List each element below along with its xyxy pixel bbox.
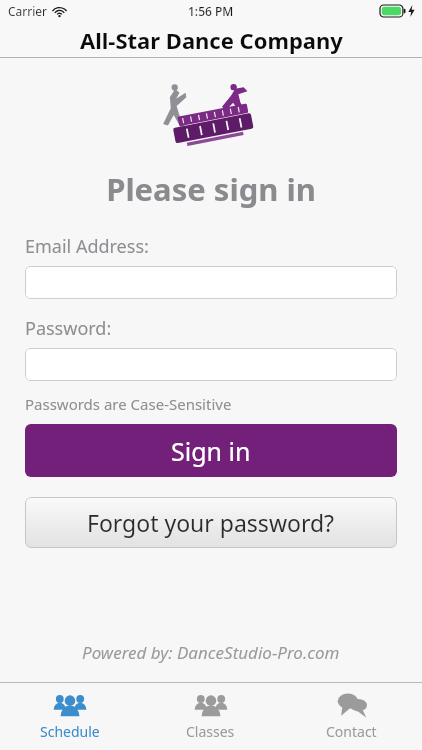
staticText: Password:: [25, 316, 112, 341]
staticText: All-Star Dance Company: [80, 25, 343, 55]
staticText: Carrier: [8, 3, 48, 19]
button[interactable]: Schedule: [0, 683, 140, 750]
button[interactable]: Forgot your password?: [25, 497, 397, 548]
staticText: Contact: [326, 722, 377, 741]
staticText: Email Address:: [25, 234, 149, 259]
staticText: Powered by: DanceStudio-Pro.com: [82, 641, 340, 664]
staticText: Sign in: [171, 434, 251, 468]
staticText: Passwords are Case-Sensitive: [25, 394, 232, 414]
button[interactable]: [25, 348, 397, 381]
staticText: Forgot your password?: [87, 507, 335, 538]
staticText: 1:56 PM: [188, 3, 234, 19]
button[interactable]: [25, 266, 397, 299]
button[interactable]: Sign in: [25, 424, 397, 477]
button[interactable]: Classes: [140, 683, 281, 750]
staticText: Schedule: [40, 722, 100, 741]
staticText: Please sign in: [106, 168, 316, 210]
button[interactable]: Contact: [281, 683, 422, 750]
staticText: Classes: [186, 722, 235, 741]
